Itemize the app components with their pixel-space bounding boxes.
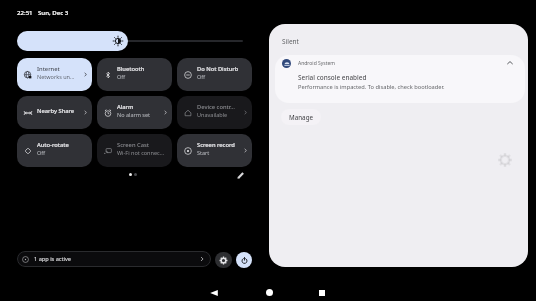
button[interactable]: Brightness bbox=[17, 31, 128, 51]
button[interactable]: Device contr… bbox=[177, 96, 252, 129]
staticText: Sun, Dec 3 bbox=[38, 8, 69, 16]
button[interactable]: Settings bbox=[215, 252, 232, 268]
button[interactable]: Bluetooth bbox=[97, 58, 172, 91]
staticText: 22:51 bbox=[17, 8, 33, 16]
staticText: No alarm set bbox=[117, 111, 151, 118]
staticText: Performance is impacted. To disable, che… bbox=[298, 83, 445, 91]
staticText: Wi-Fi not connec… bbox=[117, 149, 165, 156]
button[interactable]: Do Not Disturb bbox=[177, 58, 252, 91]
staticText: Nearby Share bbox=[37, 107, 75, 115]
button[interactable]: Manage bbox=[281, 109, 321, 125]
button[interactable]: Power bbox=[236, 252, 252, 268]
staticText: Screen record bbox=[197, 141, 235, 149]
staticText: Manage bbox=[289, 113, 314, 121]
staticText: Off bbox=[37, 149, 46, 156]
staticText: Do Not Disturb bbox=[197, 65, 239, 73]
staticText: Screen Cast bbox=[117, 141, 149, 149]
staticText: Unavailable bbox=[197, 111, 228, 118]
staticText: Alarm bbox=[117, 103, 134, 111]
button[interactable]: Collapse notification bbox=[505, 58, 515, 68]
button[interactable]: Screen record bbox=[177, 134, 252, 167]
button[interactable]: Alarm bbox=[97, 96, 172, 129]
staticText: Auto-rotate bbox=[37, 141, 69, 149]
button[interactable]: 1 app is active bbox=[17, 251, 211, 267]
staticText: Start bbox=[197, 149, 210, 156]
staticText: Silent bbox=[282, 37, 299, 46]
staticText: Device contr… bbox=[197, 103, 235, 111]
button[interactable]: Screen Cast bbox=[97, 134, 172, 167]
staticText: Bluetooth bbox=[117, 65, 145, 73]
staticText: Off bbox=[197, 73, 206, 80]
button[interactable]: Auto-rotate bbox=[17, 134, 92, 167]
button[interactable]: Recent apps bbox=[295, 282, 349, 301]
button[interactable]: Nearby Share bbox=[17, 96, 92, 129]
button[interactable]: Back bbox=[187, 282, 241, 301]
button[interactable]: Edit tiles bbox=[235, 170, 246, 181]
staticText: 1 app is active bbox=[34, 255, 71, 263]
button[interactable]: Android System bbox=[275, 55, 525, 103]
staticText: Off bbox=[117, 73, 126, 80]
staticText: Networks un… bbox=[37, 73, 75, 80]
button[interactable]: Home bbox=[242, 282, 296, 301]
staticText: Internet bbox=[37, 65, 60, 73]
button[interactable]: Internet bbox=[17, 58, 92, 91]
staticText: Serial console enabled bbox=[298, 73, 367, 82]
staticText: Android System bbox=[298, 60, 336, 67]
